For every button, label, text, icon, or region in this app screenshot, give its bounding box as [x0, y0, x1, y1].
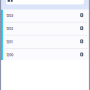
button[interactable]: 1201	[0, 36, 90, 49]
staticText: 1200	[6, 53, 13, 57]
staticText: 1201	[6, 40, 12, 44]
button[interactable]: 1200	[0, 49, 90, 62]
staticText: 1202	[6, 27, 13, 31]
button[interactable]: 1203	[0, 10, 90, 23]
staticText: 1203	[6, 14, 13, 18]
button[interactable]: 1202	[0, 23, 90, 36]
